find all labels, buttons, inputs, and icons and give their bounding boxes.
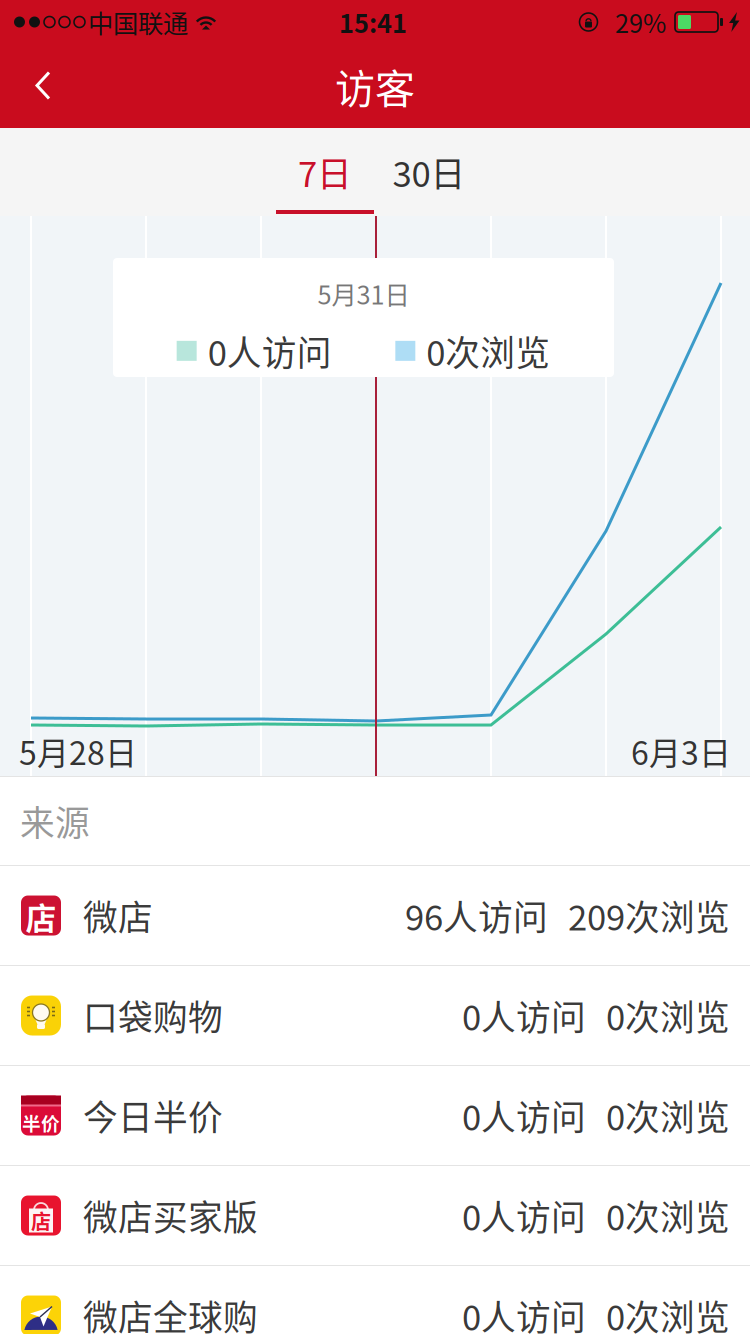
staticText: 0次浏览	[606, 990, 730, 1041]
staticText: 0次浏览	[426, 326, 550, 376]
staticText: 来源	[20, 796, 90, 846]
button[interactable]: Back	[0, 44, 80, 127]
button[interactable]: 店	[0, 866, 750, 966]
staticText: 微店买家版	[83, 1190, 258, 1241]
staticText: 0人访问	[462, 1190, 586, 1241]
staticText: 0次浏览	[606, 1090, 730, 1141]
staticText: 5月31日	[317, 275, 409, 312]
staticText: 15:41	[339, 4, 407, 40]
button[interactable]: 半价	[0, 1066, 750, 1166]
staticText: 96人访问	[405, 890, 548, 941]
button[interactable]: 30日	[374, 130, 484, 214]
button[interactable]: 微店全球购	[0, 1266, 750, 1334]
staticText: 0人访问	[462, 1090, 586, 1141]
staticText: 0人访问	[462, 990, 586, 1041]
button[interactable]: 口袋购物	[0, 966, 750, 1066]
staticText: 微店	[83, 890, 153, 941]
staticText: 店	[31, 1206, 51, 1235]
staticText: 中国联通	[88, 4, 188, 40]
staticText: 微店全球购	[83, 1290, 258, 1334]
staticText: 209次浏览	[568, 890, 730, 941]
button[interactable]: 店	[0, 1166, 750, 1266]
staticText: 店	[25, 894, 56, 939]
staticText: 7日	[298, 147, 352, 197]
staticText: 访客	[335, 57, 415, 115]
staticText: 半价	[22, 1109, 60, 1136]
staticText: 6月3日	[631, 728, 731, 774]
staticText: 0人访问	[462, 1290, 586, 1334]
staticText: 0人访问	[208, 326, 332, 376]
staticText: 0次浏览	[606, 1290, 730, 1334]
button[interactable]: 7日	[276, 130, 374, 214]
staticText: 今日半价	[83, 1090, 223, 1141]
staticText: 5月28日	[19, 728, 137, 774]
staticText: 口袋购物	[83, 990, 223, 1041]
staticText: 30日	[392, 147, 465, 197]
staticText: 0次浏览	[606, 1190, 730, 1241]
staticText: 29%	[615, 4, 666, 40]
